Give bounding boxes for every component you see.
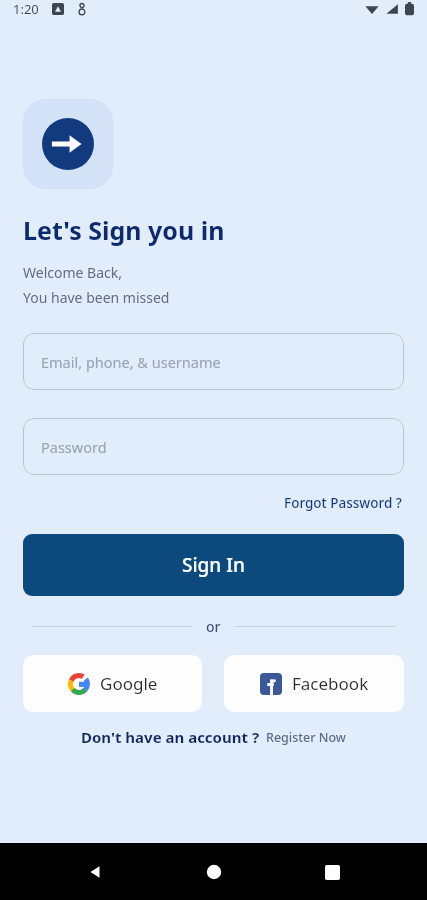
button[interactable]: Sign In: [23, 534, 404, 596]
button[interactable]: Forgot Password ?: [282, 492, 404, 514]
staticText: Sign In: [182, 552, 245, 578]
staticText: Let's Sign you in: [23, 213, 225, 247]
button[interactable]: Email, phone, & username: [23, 333, 404, 390]
staticText: Email, phone, & username: [41, 352, 221, 372]
button[interactable]: Home: [191, 849, 237, 895]
staticText: Register Now: [266, 729, 346, 746]
staticText: or: [206, 617, 221, 636]
button[interactable]: Google: [23, 655, 202, 712]
staticText: Don't have an account ?: [81, 727, 260, 747]
button[interactable]: Don't have an account ?: [23, 727, 404, 747]
staticText: You have been missed: [23, 288, 170, 307]
button[interactable]: Facebook: [224, 655, 404, 712]
button[interactable]: Back: [72, 849, 118, 895]
staticText: 1:20: [13, 0, 39, 18]
staticText: Forgot Password ?: [284, 494, 402, 512]
staticText: Google: [100, 672, 158, 695]
staticText: Facebook: [292, 672, 369, 695]
staticText: Password: [41, 437, 107, 457]
staticText: Welcome Back,: [23, 263, 122, 282]
button[interactable]: Password: [23, 418, 404, 475]
button[interactable]: Recent apps: [309, 849, 355, 895]
